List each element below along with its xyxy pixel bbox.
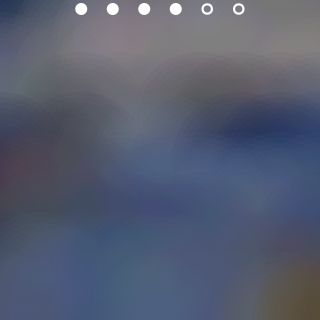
button[interactable]: Page 5	[194, 0, 220, 20]
button[interactable]: Page 2	[100, 0, 126, 20]
button[interactable]: Page 3	[131, 0, 157, 20]
button[interactable]: Page 4	[163, 0, 189, 20]
button[interactable]: Page 6	[226, 0, 252, 20]
button[interactable]: Page 1	[68, 0, 94, 20]
